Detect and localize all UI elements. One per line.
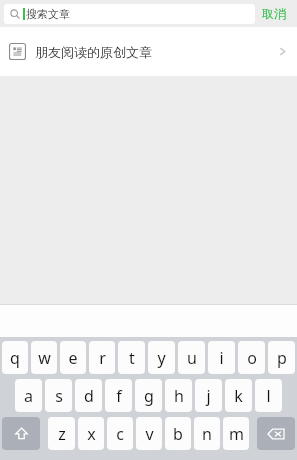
- button[interactable]: x: [78, 417, 104, 450]
- staticText: e: [68, 347, 78, 369]
- staticText: f: [116, 385, 122, 407]
- button[interactable]: l: [255, 379, 282, 412]
- button[interactable]: Shift: [2, 417, 40, 450]
- button[interactable]: 搜索文章: [4, 4, 255, 24]
- staticText: v: [145, 423, 154, 445]
- button[interactable]: c: [107, 417, 133, 450]
- staticText: k: [234, 385, 243, 407]
- staticText: a: [24, 385, 33, 407]
- button[interactable]: q: [2, 341, 28, 374]
- button[interactable]: j: [195, 379, 222, 412]
- button[interactable]: h: [165, 379, 192, 412]
- button[interactable]: f: [105, 379, 132, 412]
- button[interactable]: n: [194, 417, 220, 450]
- button[interactable]: y: [148, 341, 175, 374]
- button[interactable]: 朋友阅读的原创文章: [0, 27, 297, 76]
- button[interactable]: z: [48, 417, 75, 450]
- staticText: d: [84, 385, 94, 407]
- staticText: n: [202, 423, 212, 445]
- staticText: z: [58, 423, 66, 445]
- staticText: u: [187, 347, 197, 369]
- staticText: m: [229, 423, 244, 445]
- staticText: h: [174, 385, 184, 407]
- button[interactable]: r: [89, 341, 115, 374]
- staticText: o: [247, 347, 257, 369]
- staticText: w: [38, 347, 51, 369]
- button[interactable]: e: [60, 341, 86, 374]
- button[interactable]: b: [165, 417, 191, 450]
- button[interactable]: p: [268, 341, 295, 374]
- staticText: s: [55, 385, 63, 407]
- button[interactable]: v: [136, 417, 162, 450]
- button[interactable]: i: [208, 341, 235, 374]
- staticText: 搜索文章: [26, 7, 70, 21]
- button[interactable]: u: [178, 341, 205, 374]
- button[interactable]: a: [15, 379, 42, 412]
- staticText: p: [277, 347, 287, 369]
- staticText: r: [99, 347, 106, 369]
- button[interactable]: w: [31, 341, 57, 374]
- staticText: b: [173, 423, 183, 445]
- staticText: i: [219, 347, 224, 369]
- staticText: c: [116, 423, 124, 445]
- button[interactable]: o: [238, 341, 265, 374]
- button[interactable]: Backspace: [257, 417, 295, 450]
- staticText: l: [266, 385, 271, 407]
- staticText: q: [10, 347, 20, 369]
- staticText: g: [144, 385, 154, 407]
- button[interactable]: g: [135, 379, 162, 412]
- button[interactable]: t: [118, 341, 145, 374]
- staticText: j: [206, 385, 211, 407]
- button[interactable]: m: [223, 417, 249, 450]
- staticText: y: [157, 347, 166, 369]
- staticText: t: [129, 347, 135, 369]
- button[interactable]: s: [45, 379, 72, 412]
- staticText: 取消: [262, 6, 286, 21]
- button[interactable]: d: [75, 379, 102, 412]
- button[interactable]: 取消: [255, 4, 293, 23]
- staticText: 朋友阅读的原创文章: [35, 44, 152, 60]
- staticText: x: [87, 423, 96, 445]
- button[interactable]: k: [225, 379, 252, 412]
